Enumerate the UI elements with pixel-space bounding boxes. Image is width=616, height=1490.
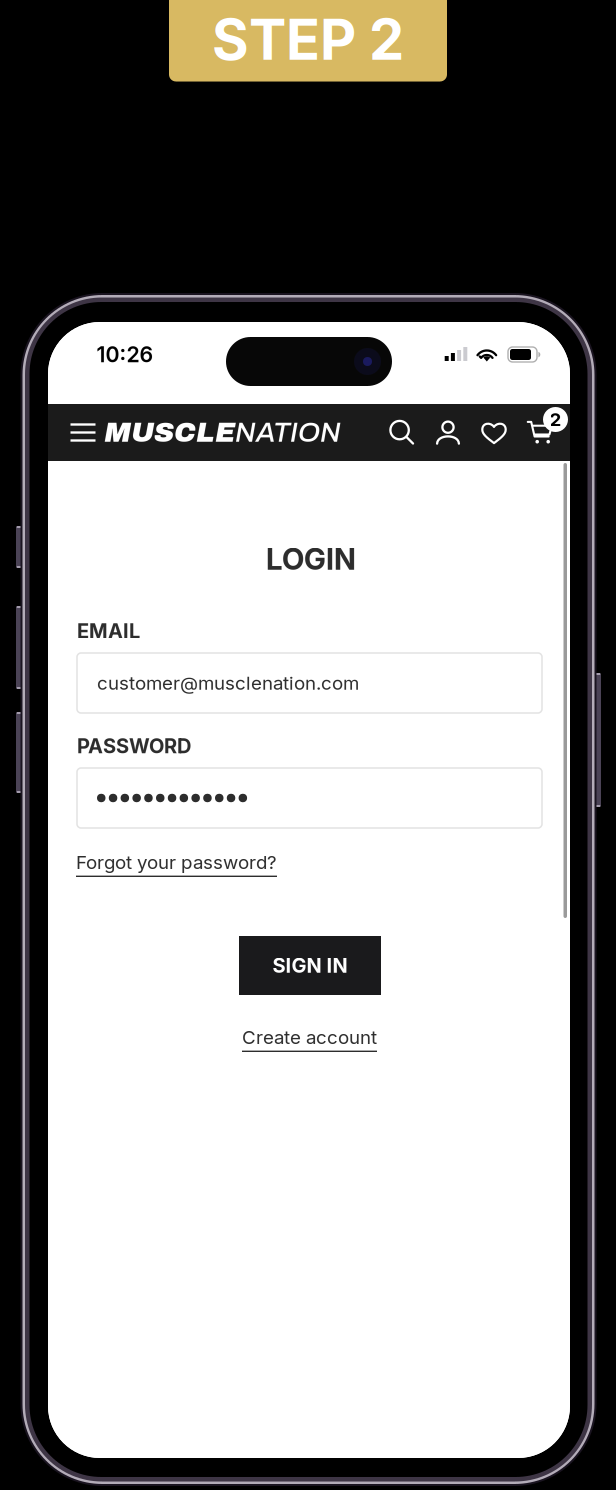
staticText: MUSCLE: [104, 417, 235, 448]
staticText: NATION: [235, 417, 341, 448]
button[interactable]: customer@musclenation.com: [77, 653, 542, 713]
staticText: 2: [549, 408, 561, 431]
button[interactable]: STEP 2: [169, 0, 447, 85]
button[interactable]: Account: [425, 404, 471, 461]
staticText: customer@musclenation.com: [97, 672, 359, 694]
staticText: SIGN IN: [272, 953, 347, 978]
button[interactable]: Wishlist: [471, 404, 517, 461]
staticText: PASSWORD: [77, 734, 191, 758]
button[interactable]: [77, 768, 542, 828]
staticText: Create account: [242, 1026, 377, 1049]
staticText: LOGIN: [266, 541, 356, 577]
staticText: 10:26: [96, 342, 153, 367]
staticText: STEP 2: [212, 6, 404, 73]
button[interactable]: Forgot your password?: [76, 851, 277, 877]
button[interactable]: Search: [379, 404, 425, 461]
staticText: Forgot your password?: [76, 851, 277, 874]
staticText: EMAIL: [77, 619, 140, 643]
button[interactable]: Create account: [242, 1026, 377, 1052]
button[interactable]: Menu: [62, 404, 104, 461]
button[interactable]: SIGN IN: [239, 936, 381, 995]
button[interactable]: Cart, 2 items: [517, 404, 563, 461]
